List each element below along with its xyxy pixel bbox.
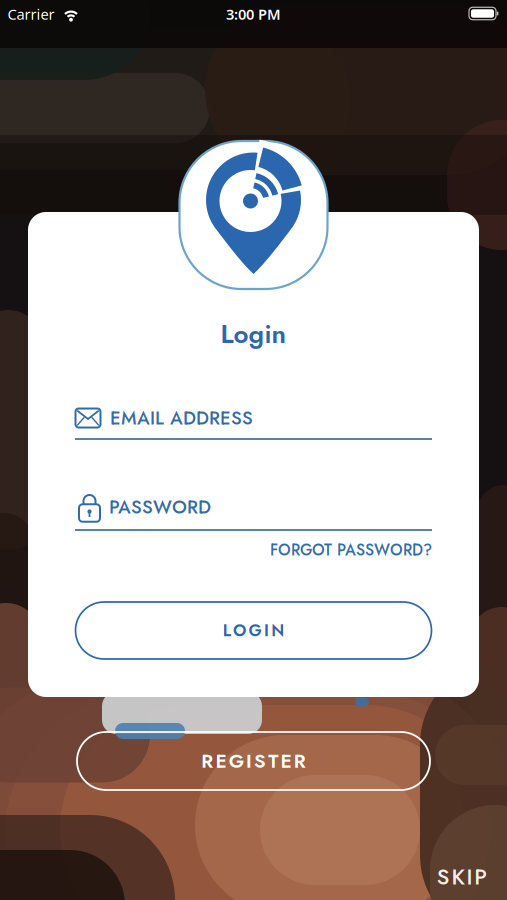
staticText: EMAIL ADDRESS — [110, 405, 253, 431]
staticText: PASSWORD — [109, 494, 211, 520]
button[interactable]: R — [77, 732, 430, 790]
staticText: L — [223, 619, 231, 642]
staticText: FORGOT PASSWORD? — [270, 539, 432, 561]
staticText: T — [268, 747, 278, 775]
staticText: K — [452, 861, 465, 893]
staticText: Login — [220, 315, 286, 353]
staticText: O — [233, 619, 246, 642]
staticText: N — [271, 619, 284, 642]
staticText: 3:00 PM — [226, 4, 281, 24]
button[interactable]: FORGOT PASSWORD? — [75, 538, 432, 562]
button[interactable]: L — [75, 602, 431, 659]
staticText: E — [280, 747, 291, 775]
staticText: S — [254, 747, 266, 775]
button[interactable]: S — [417, 862, 507, 892]
staticText: I — [466, 861, 472, 893]
staticText: S — [437, 861, 450, 893]
staticText: G — [248, 619, 261, 642]
staticText: R — [201, 747, 213, 775]
staticText: G — [229, 747, 244, 775]
button[interactable]: Password — [75, 484, 432, 536]
staticText: E — [215, 747, 226, 775]
staticText: I — [246, 747, 252, 775]
staticText: R — [294, 747, 306, 775]
staticText: P — [474, 861, 487, 893]
staticText: Carrier — [7, 4, 54, 24]
staticText: I — [264, 619, 269, 642]
button[interactable]: Email address — [75, 395, 432, 445]
